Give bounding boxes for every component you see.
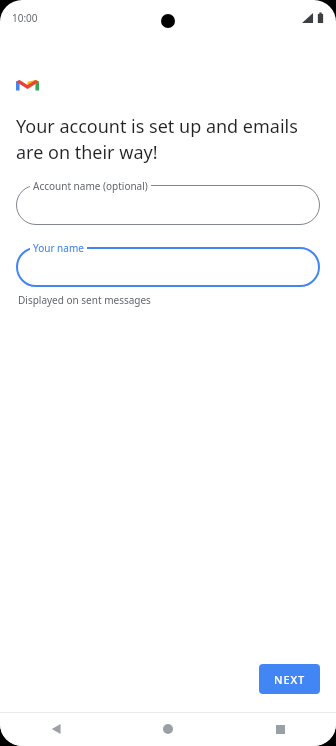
staticText: Account name (optional): [33, 179, 148, 193]
staticText: Your account is set up and emails are on…: [16, 114, 320, 164]
button[interactable]: [16, 185, 320, 225]
staticText: Displayed on sent messages: [18, 293, 151, 307]
staticText: 10:00: [12, 11, 38, 25]
button[interactable]: [16, 247, 320, 287]
button[interactable]: NEXT: [259, 664, 320, 694]
staticText: NEXT: [274, 672, 305, 687]
button[interactable]: Back: [32, 712, 80, 746]
staticText: Your name: [33, 241, 84, 255]
button[interactable]: Home: [144, 712, 192, 746]
button[interactable]: Recent apps: [256, 712, 304, 746]
